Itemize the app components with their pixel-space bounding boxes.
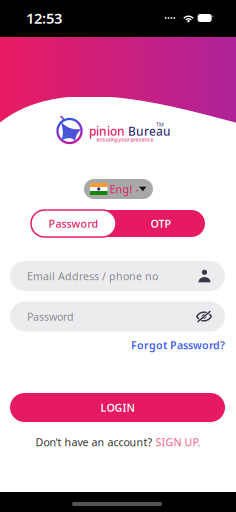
button[interactable]: SIGN UP.: [155, 436, 205, 448]
staticText: SIGN UP.: [155, 435, 200, 449]
staticText: Bureau: [128, 123, 171, 139]
staticText: pinion: [89, 123, 128, 139]
staticText: Engl -: [109, 182, 138, 196]
button[interactable]: Forgot Password?: [105, 339, 225, 351]
button[interactable]: OTP: [117, 210, 205, 237]
staticText: 12:53: [26, 8, 62, 28]
staticText: TM: [156, 121, 164, 128]
staticText: Don't have an account?: [35, 435, 152, 449]
staticText: ensuring your presence: [96, 136, 153, 143]
button[interactable]: Engl -: [84, 179, 153, 199]
staticText: OTP: [150, 216, 171, 231]
button[interactable]: Password: [31, 210, 116, 237]
staticText: LOGIN: [100, 400, 134, 415]
staticText: Password: [27, 309, 74, 324]
staticText: Email Address / phone no: [27, 269, 158, 283]
staticText: Password: [48, 216, 98, 231]
staticText: Forgot Password?: [131, 338, 225, 352]
button[interactable]: LOGIN: [10, 393, 225, 422]
